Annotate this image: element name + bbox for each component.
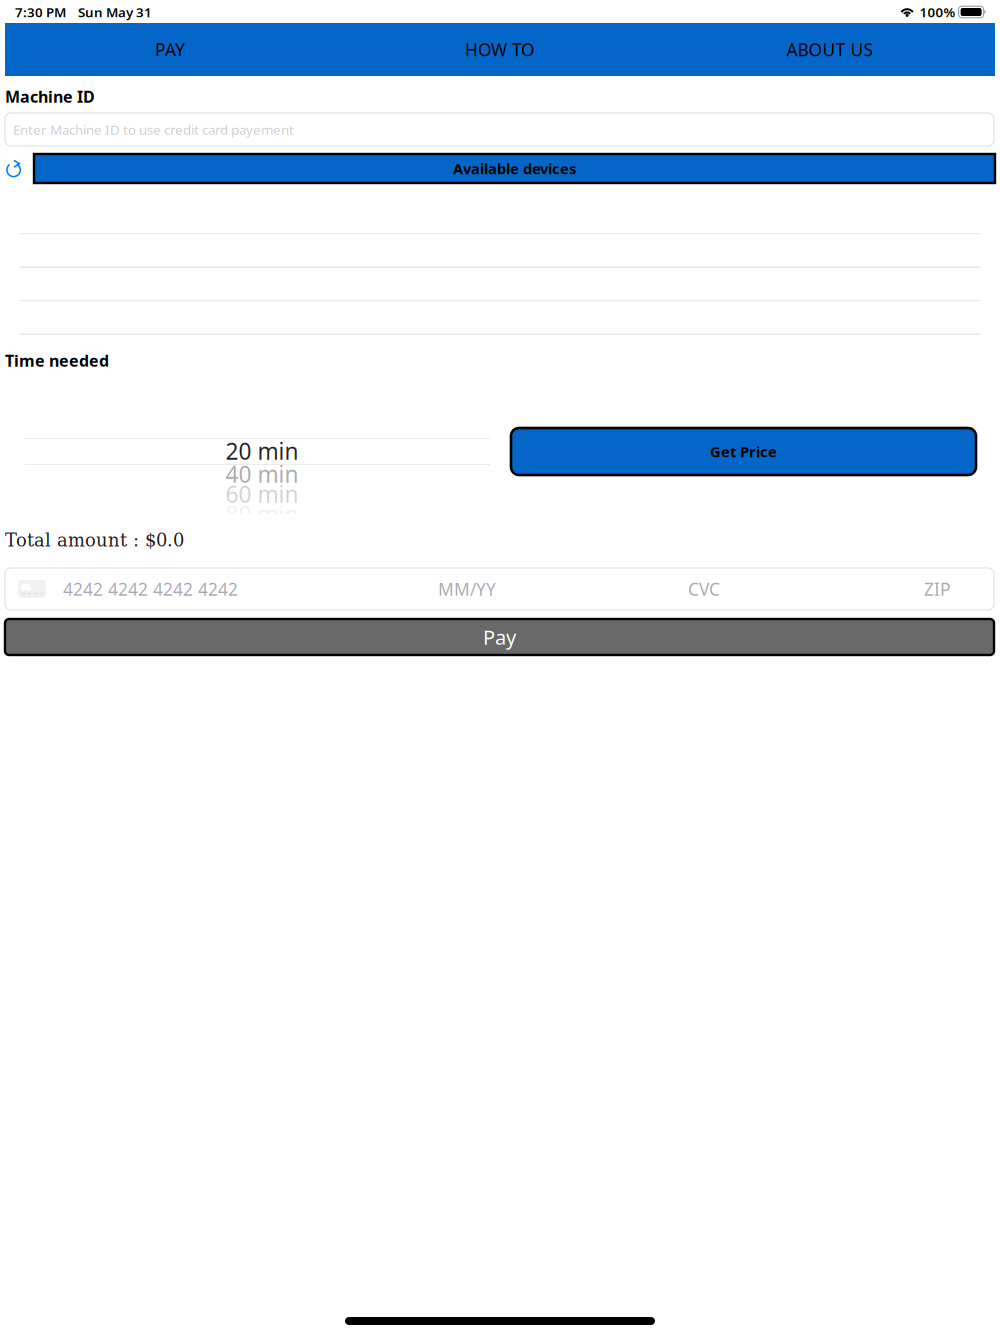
staticText: Time needed — [5, 350, 109, 371]
staticText: MM/YY — [438, 577, 496, 600]
staticText: CVC — [688, 577, 720, 600]
button[interactable]: Refresh devices — [3, 157, 27, 181]
staticText: 4242 4242 4242 4242 — [63, 577, 238, 600]
staticText: 80 min — [225, 499, 298, 529]
staticText: HOW TO — [465, 38, 535, 61]
staticText: 7:30 PM — [15, 3, 66, 21]
button[interactable]: Pay — [5, 619, 994, 655]
staticText: Pay — [483, 624, 516, 650]
staticText: Get Price — [710, 442, 777, 461]
button[interactable]: PAY — [5, 23, 335, 76]
staticText: ABOUT US — [786, 38, 873, 61]
staticText: 20 min — [225, 436, 298, 466]
button[interactable]: HOW TO — [335, 23, 665, 76]
staticText: ZIP — [924, 577, 950, 600]
staticText: Sun May 31 — [78, 3, 152, 21]
button[interactable]: Get Price — [511, 428, 976, 475]
staticText: Machine ID — [5, 86, 95, 107]
staticText: Enter Machine ID to use credit card paye… — [13, 121, 294, 138]
staticText: Available devices — [453, 159, 576, 178]
staticText: 40 min — [225, 459, 298, 489]
staticText: 60 min — [225, 479, 298, 509]
staticText: 100% — [920, 3, 956, 21]
button[interactable]: ABOUT US — [665, 23, 995, 76]
staticText: Total amount : $0.0 — [5, 530, 184, 551]
staticText: PAY — [155, 38, 185, 61]
button[interactable]: Available devices — [34, 154, 995, 183]
